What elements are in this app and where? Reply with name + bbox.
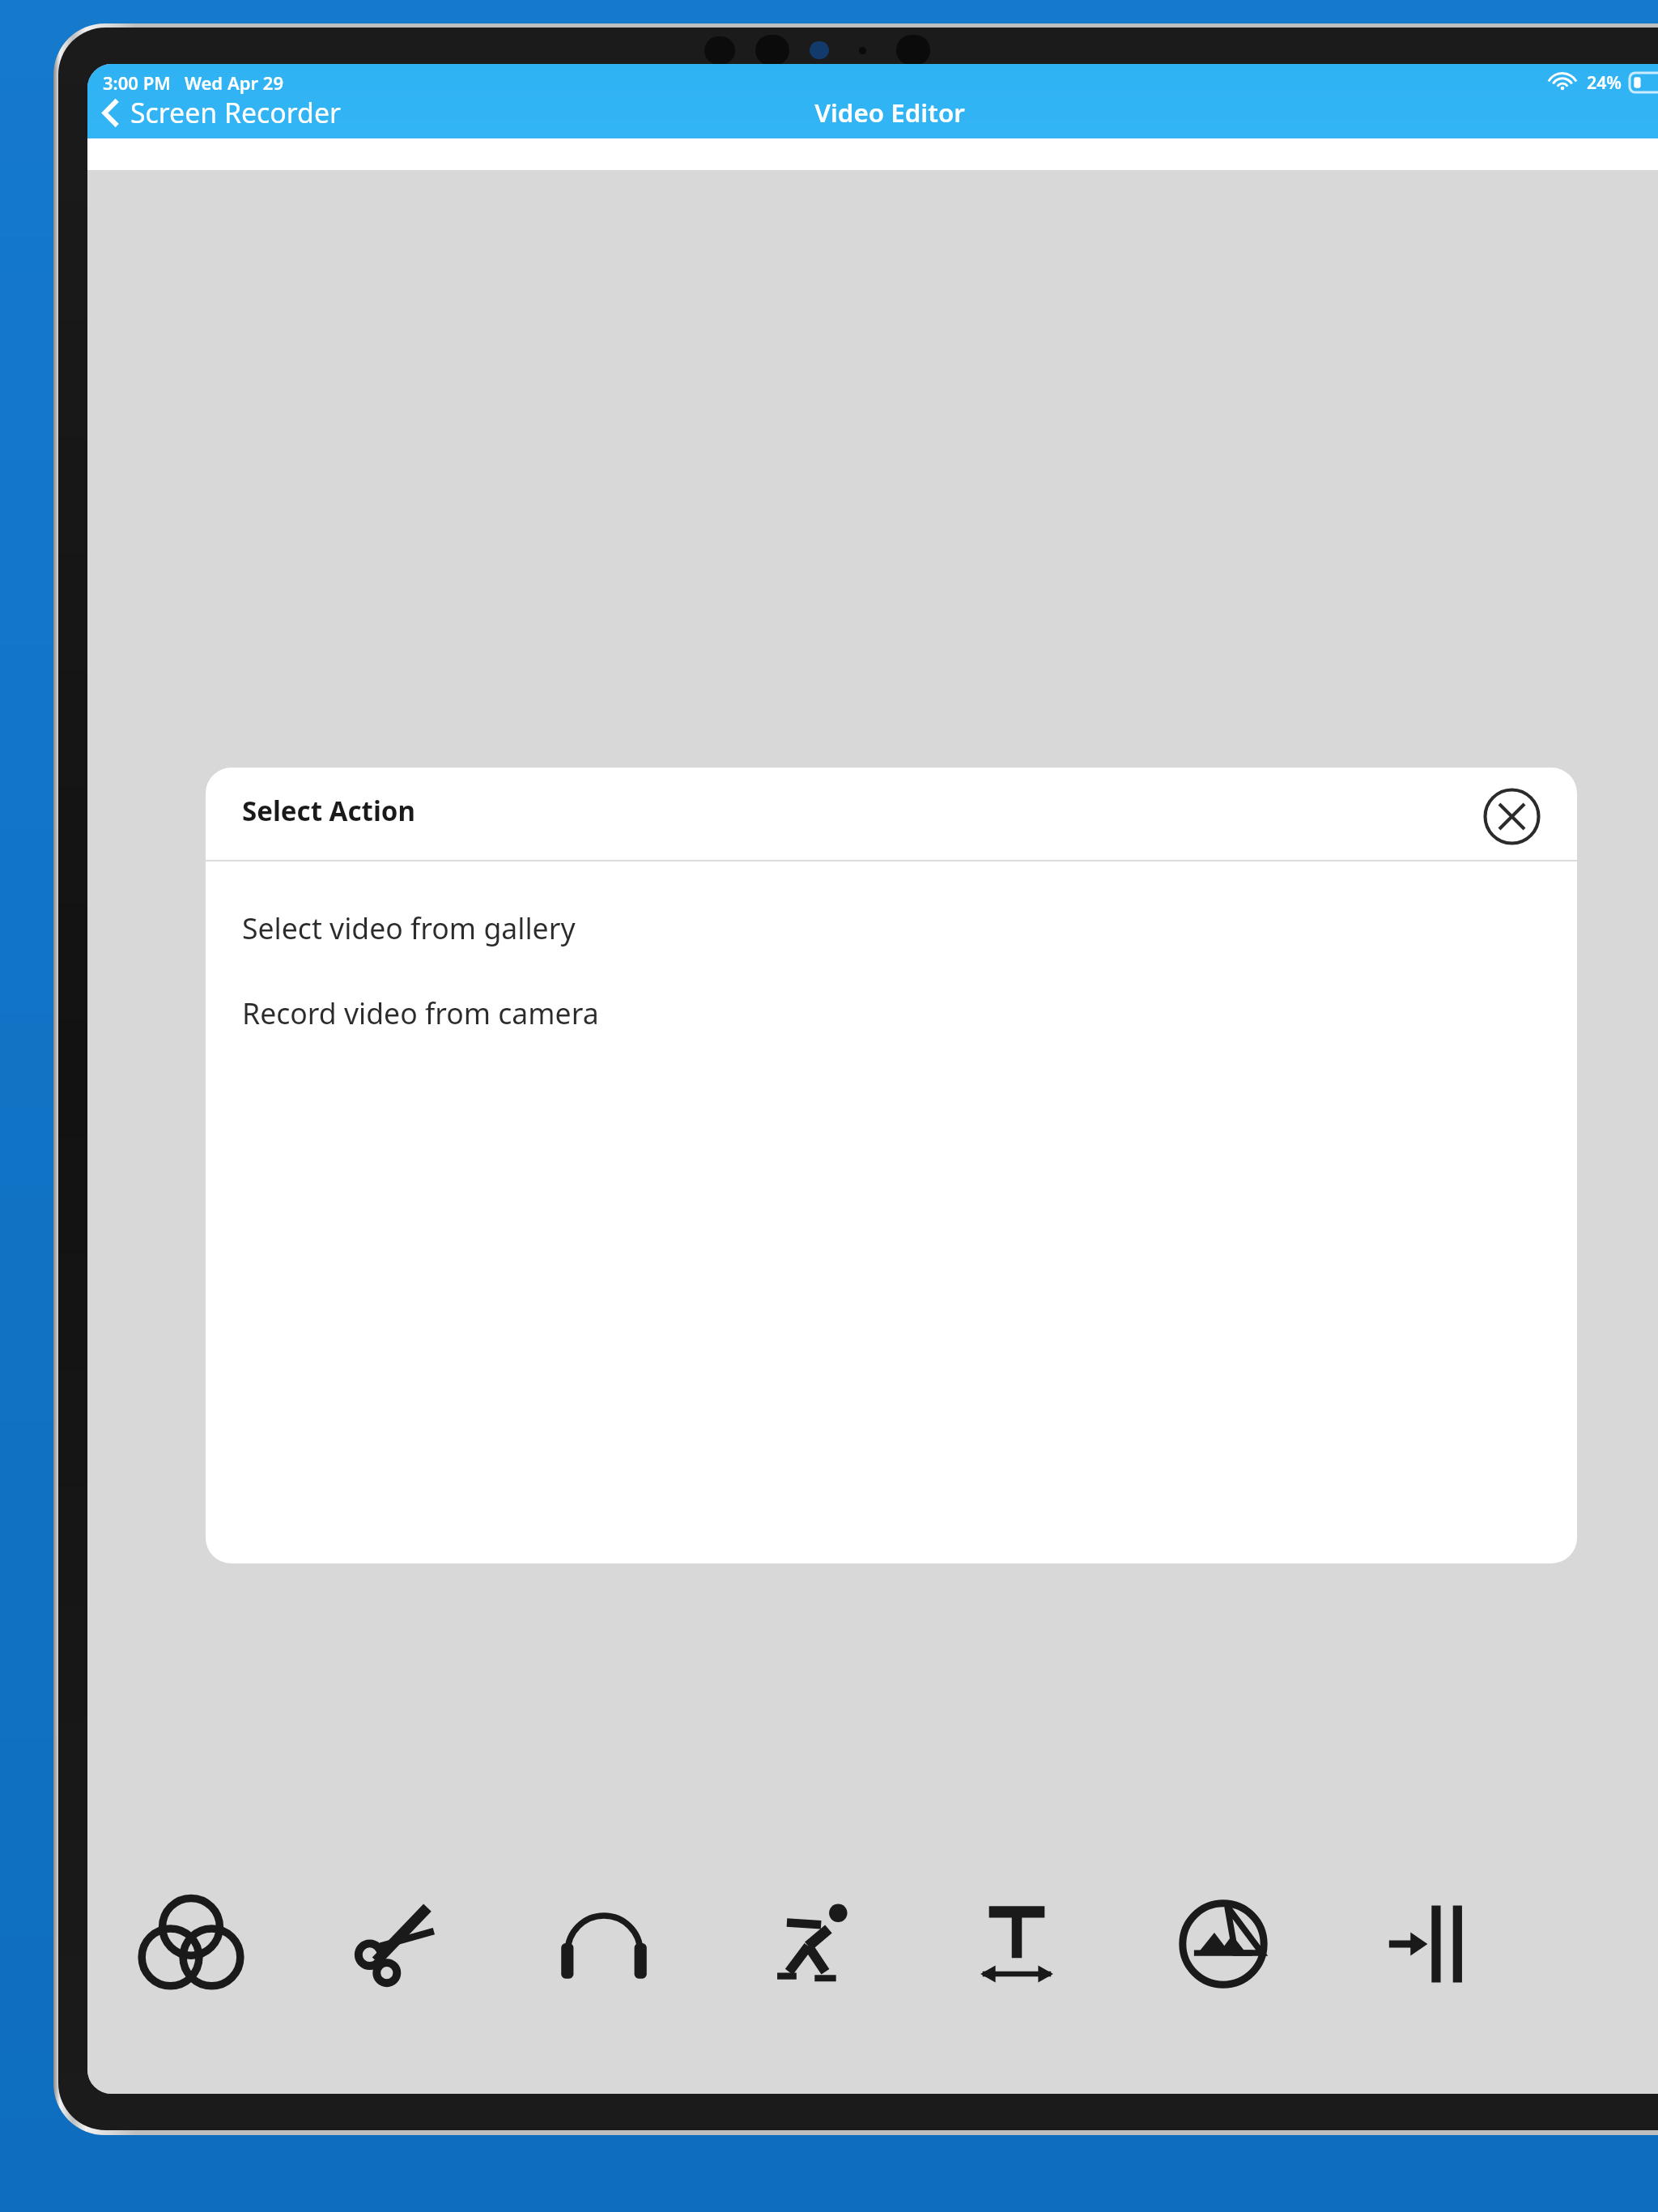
staticText: Video Editor bbox=[814, 96, 965, 130]
staticText: Record video from camera bbox=[242, 993, 599, 1032]
button[interactable]: Select video from gallery bbox=[206, 897, 1577, 959]
staticText: 24% bbox=[1587, 70, 1622, 94]
button[interactable]: Image overlay bbox=[1120, 1868, 1326, 2020]
button[interactable]: Speed bbox=[707, 1868, 913, 2020]
button[interactable]: Text bbox=[913, 1868, 1120, 2020]
button[interactable]: Filters bbox=[87, 1868, 294, 2020]
button[interactable]: Audio bbox=[500, 1868, 707, 2020]
staticText: Screen Recorder bbox=[130, 94, 341, 131]
staticText: Select Action bbox=[242, 793, 415, 829]
button[interactable]: Trim bbox=[294, 1868, 500, 2020]
button[interactable]: Close bbox=[1482, 786, 1542, 847]
button[interactable]: Merge bbox=[1326, 1868, 1533, 2020]
button[interactable]: Screen Recorder bbox=[98, 94, 341, 131]
staticText: Select video from gallery bbox=[242, 908, 576, 947]
button[interactable]: Record video from camera bbox=[206, 982, 1577, 1044]
staticText: 3:00 PM Wed Apr 29 bbox=[103, 70, 284, 95]
